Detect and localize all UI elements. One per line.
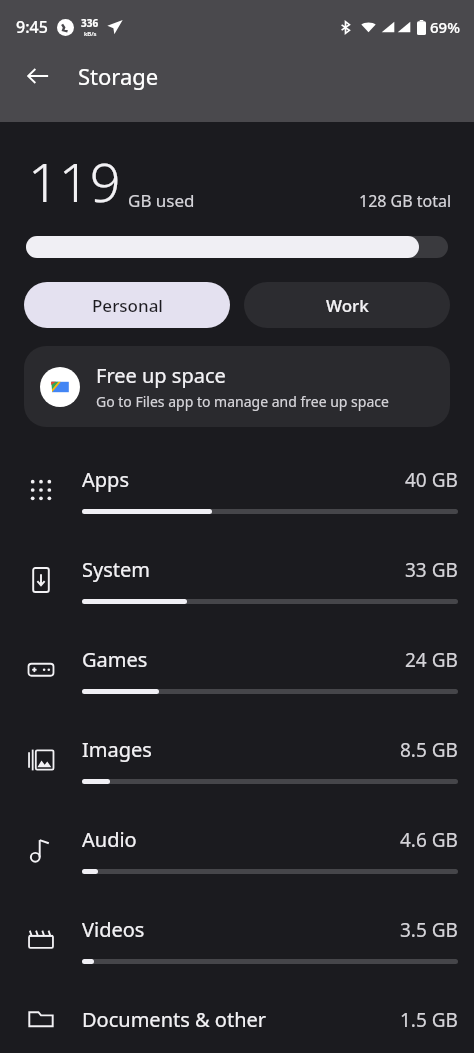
button[interactable]: Audio [0,805,474,895]
staticText: System [82,556,397,583]
staticText: 33 GB [405,557,458,583]
button[interactable]: Work [244,282,450,328]
staticText: 119 [28,144,121,218]
staticText: 9:45 [16,16,48,38]
staticText: GB used [128,189,195,212]
staticText: Apps [82,466,397,493]
staticText: 1.5 GB [400,1007,458,1033]
button[interactable]: Free up space [24,346,450,427]
staticText: 69% [430,17,460,37]
staticText: 24 GB [405,647,458,673]
button[interactable]: Back [16,54,60,98]
staticText: Go to Files app to manage and free up sp… [96,392,389,411]
button[interactable]: System [0,535,474,625]
staticText: 3.5 GB [400,917,458,943]
staticText: Work [326,294,369,317]
staticText: Audio [82,826,392,853]
staticText: Games [82,646,397,673]
staticText: Images [82,736,392,763]
staticText: Videos [82,916,392,943]
staticText: 40 GB [405,467,458,493]
button[interactable]: Images [0,715,474,805]
button[interactable]: Videos [0,895,474,985]
staticText: Personal [92,294,163,317]
staticText: Free up space [96,362,226,389]
button[interactable]: Personal [24,282,230,328]
staticText: kB/s [84,30,97,38]
staticText: 4.6 GB [400,827,458,853]
button[interactable]: Apps [0,445,474,535]
staticText: 8.5 GB [400,737,458,763]
staticText: Storage [78,61,159,91]
button[interactable]: Documents & other [0,985,474,1053]
button[interactable]: Games [0,625,474,715]
staticText: Documents & other [82,1006,392,1033]
staticText: 128 GB total [359,190,452,212]
staticText: 336 [81,16,99,30]
